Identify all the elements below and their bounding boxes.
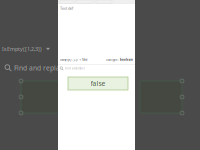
- button[interactable]: IsEmpty([1,2,3]): [0, 43, 56, 55]
- staticText: IsEmpty([1,2]) → false: [60, 58, 88, 61]
- staticText: false: [90, 79, 105, 88]
- button[interactable]: Find and replace: [0, 62, 58, 74]
- staticText: Test def: [60, 5, 73, 11]
- staticText: boolean: [120, 58, 133, 61]
- staticText: Find and replace: [14, 64, 67, 72]
- staticText: Find a member: [65, 67, 85, 70]
- staticText: Data type:: [106, 58, 119, 61]
- staticText: IsEmpty([1,2,3]): [2, 45, 42, 53]
- button[interactable]: Find a member: [60, 66, 133, 71]
